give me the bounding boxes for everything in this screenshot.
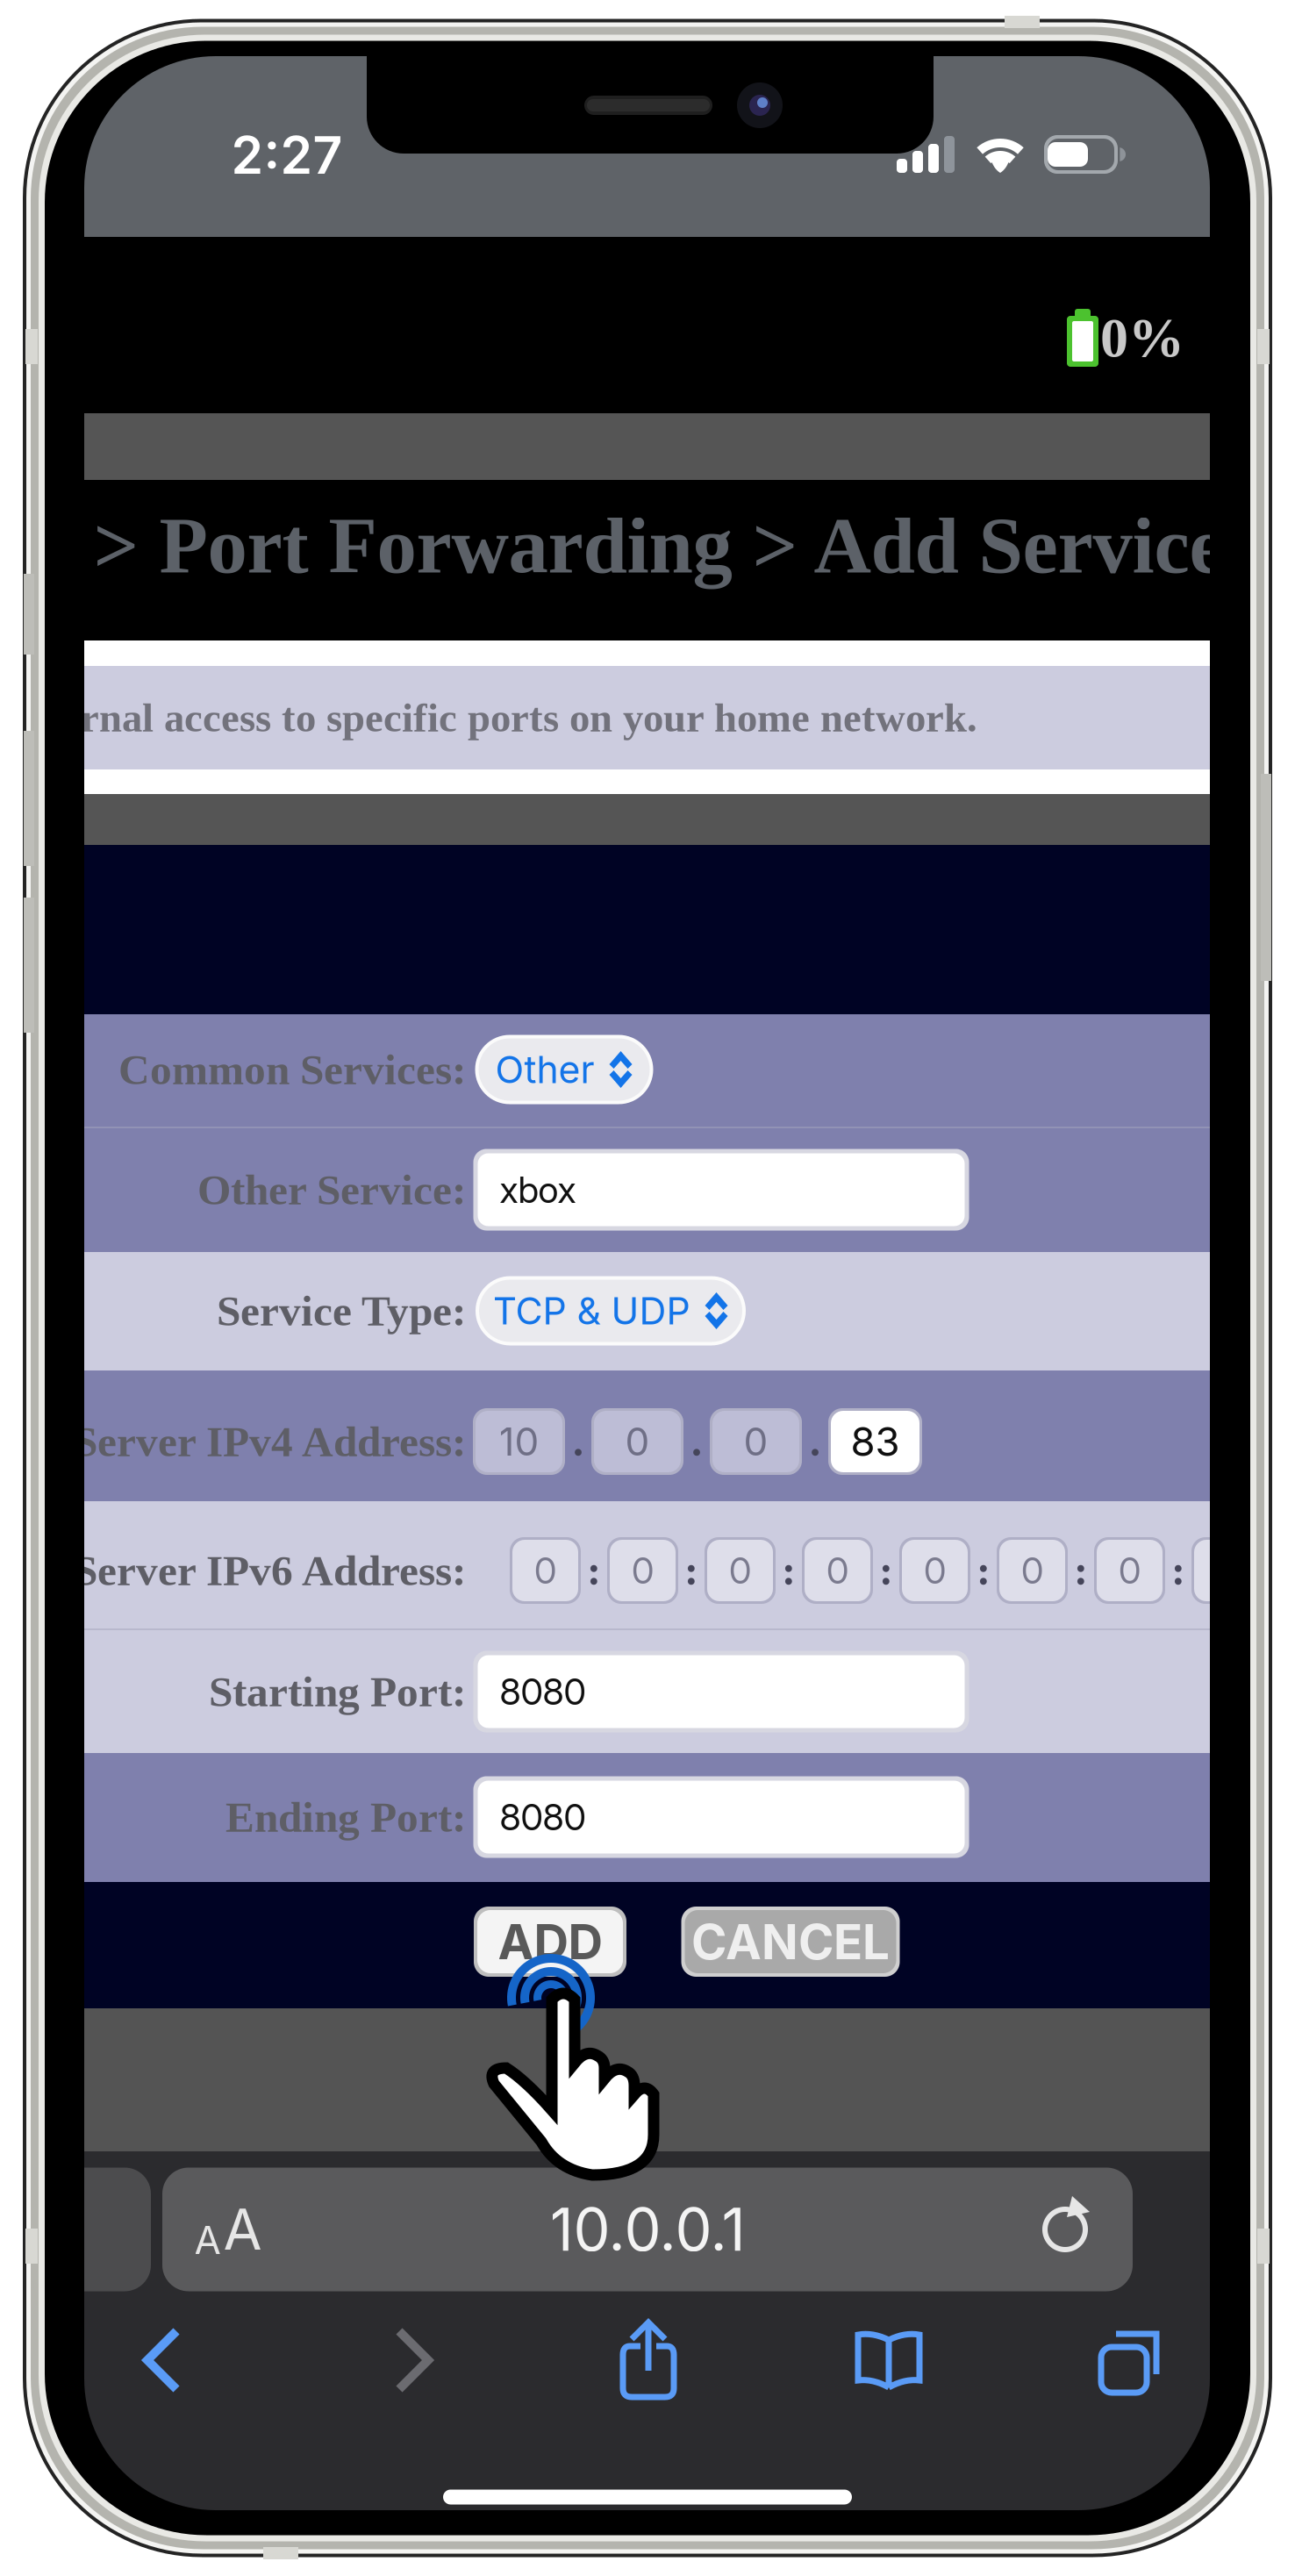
staticText: 0 xyxy=(729,1549,751,1592)
staticText: ADD xyxy=(498,1913,602,1971)
staticText: 10.0.0.1 xyxy=(550,2194,745,2265)
staticText: 0 xyxy=(744,1418,768,1465)
staticText: TCP & UDP xyxy=(493,1288,690,1333)
staticText: Common Services: xyxy=(118,1046,466,1093)
staticText: 0 xyxy=(625,1418,650,1465)
staticText: 8080 xyxy=(500,1670,586,1714)
staticText: : xyxy=(587,1547,601,1594)
staticText: . xyxy=(691,1418,702,1465)
staticText: : xyxy=(1074,1547,1088,1594)
button[interactable]: Tabs xyxy=(1048,2295,1214,2427)
staticText: Starting Port: xyxy=(209,1668,466,1716)
staticText: 0 xyxy=(826,1549,848,1592)
staticText: 8080 xyxy=(500,1795,586,1839)
staticText: Other Service: xyxy=(197,1166,466,1214)
staticText: 0 xyxy=(534,1549,556,1592)
staticText: Other xyxy=(495,1047,594,1092)
button[interactable]: Forward xyxy=(330,2295,497,2427)
button[interactable]: Share xyxy=(566,2295,733,2427)
button[interactable]: Page settings xyxy=(162,2190,294,2269)
staticText: 10 xyxy=(499,1418,539,1465)
staticText: 0 xyxy=(632,1549,654,1592)
button[interactable]: Back xyxy=(79,2295,246,2427)
staticText: Server IPv4 Address: xyxy=(74,1418,466,1465)
staticText: : xyxy=(879,1547,893,1594)
staticText: : xyxy=(684,1547,698,1594)
staticText: Server IPv6 Address: xyxy=(74,1547,466,1594)
staticText: 0 xyxy=(1021,1549,1043,1592)
staticText: 0% xyxy=(1100,307,1184,369)
staticText: : xyxy=(1171,1547,1185,1594)
staticText: > Port Forwarding > Add Service xyxy=(93,502,1224,590)
staticText: A xyxy=(223,2195,262,2263)
staticText: 0 xyxy=(1119,1549,1141,1592)
staticText: Ending Port: xyxy=(225,1793,466,1841)
staticText: : xyxy=(782,1547,796,1594)
staticText: CANCEL xyxy=(691,1913,890,1971)
button[interactable]: Other xyxy=(473,1033,655,1106)
staticText: 0 xyxy=(924,1549,946,1592)
staticText: A xyxy=(194,2217,221,2263)
staticText: xbox xyxy=(500,1168,576,1212)
staticText: 83 xyxy=(851,1418,900,1466)
button[interactable]: Bookmarks xyxy=(805,2295,972,2427)
staticText: rnal access to specific ports on your ho… xyxy=(81,695,977,740)
staticText: Service Type: xyxy=(217,1287,466,1335)
button[interactable]: ADD xyxy=(471,1904,629,1979)
staticText: . xyxy=(573,1418,583,1465)
button[interactable]: Reload xyxy=(1001,2190,1133,2269)
staticText: 2:27 xyxy=(231,124,343,186)
button[interactable]: CANCEL xyxy=(679,1904,902,1979)
button[interactable]: TCP & UDP xyxy=(474,1274,748,1347)
staticText: : xyxy=(977,1547,991,1594)
staticText: . xyxy=(810,1418,820,1465)
